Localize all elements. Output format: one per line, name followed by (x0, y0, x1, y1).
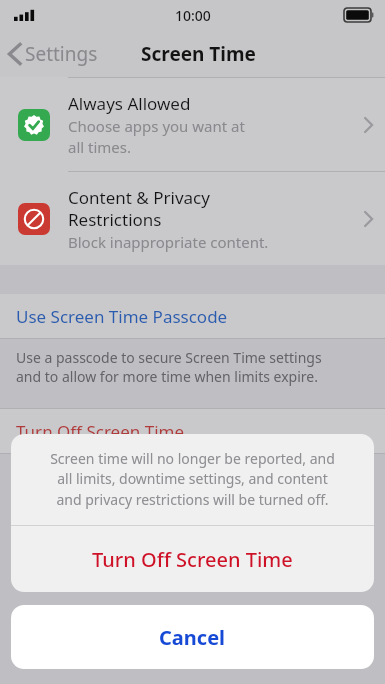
staticText: Content & Privacy Restrictions (68, 186, 210, 231)
button[interactable]: Content & Privacy Restrictions (0, 172, 385, 265)
button[interactable]: Use Screen Time Passcode (0, 294, 385, 338)
staticText: Use a passcode to secure Screen Time set… (16, 348, 322, 386)
staticText: Turn Off Screen Time (16, 420, 185, 443)
staticText: Cancel (159, 624, 226, 651)
other: Content & Privacy Restrictions (18, 203, 50, 235)
button[interactable]: Settings (8, 41, 98, 67)
button[interactable]: Turn Off Screen Time (11, 526, 374, 592)
button[interactable]: Always Allowed (0, 78, 385, 171)
button[interactable]: Cancel (11, 605, 374, 669)
staticText: Turn Off Screen Time (92, 546, 293, 573)
staticText: Screen time will no longer be reported, … (21, 449, 364, 510)
staticText: Settings (25, 41, 98, 67)
staticText: Screen Time (141, 41, 256, 67)
staticText: Use Screen Time Passcode (16, 305, 228, 328)
other: Always Allowed (18, 109, 50, 141)
staticText: Block inappropriate content. (68, 232, 269, 252)
staticText: Always Allowed (68, 92, 191, 115)
staticText: Choose apps you want at all times. (68, 116, 245, 158)
staticText: 10:00 (175, 6, 211, 25)
